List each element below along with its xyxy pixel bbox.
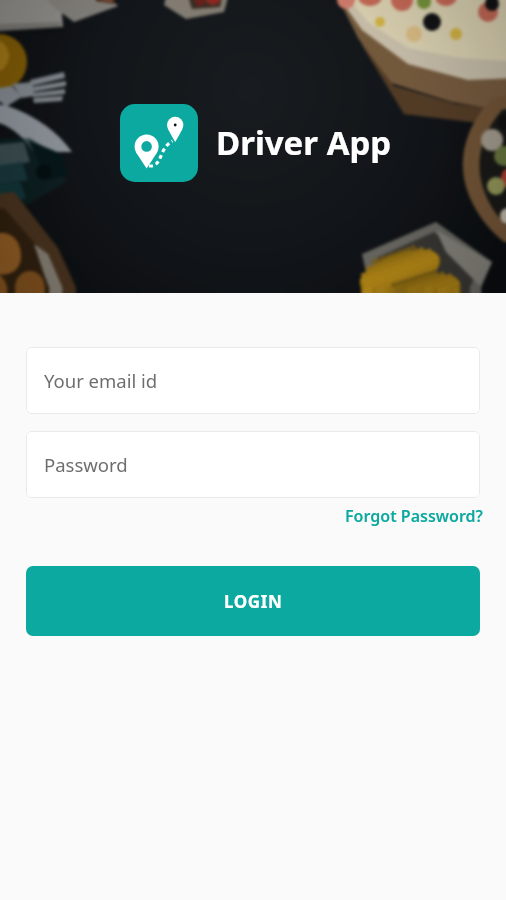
staticText: Driver App [216,120,392,165]
button[interactable]: Forgot Password? [345,505,483,527]
other: Driver App logo [120,104,198,182]
staticText: Your email id [44,368,158,393]
staticText: Forgot Password? [345,505,483,527]
staticText: LOGIN [224,590,283,613]
staticText: Password [44,452,128,477]
button[interactable]: Password [26,431,480,498]
button[interactable]: Your email id [26,347,480,414]
button[interactable]: LOGIN [26,566,480,636]
